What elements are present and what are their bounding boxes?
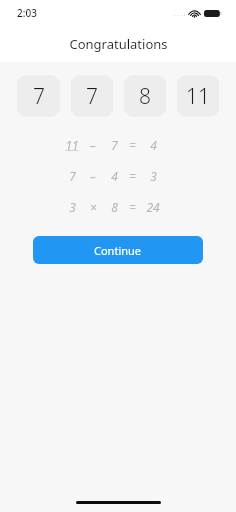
staticText: 3 [69,199,76,215]
staticText: Continue [94,243,142,258]
staticText: 3 [150,168,157,184]
button[interactable]: 7 [17,75,60,117]
button[interactable]: 7 [71,75,113,117]
staticText: Congratulations [69,35,168,53]
staticText: = [129,199,136,215]
button[interactable]: 11 [177,75,219,117]
staticText: = [129,168,136,184]
staticText: 4 [111,168,118,184]
staticText: × [90,199,97,215]
staticText: = [129,137,136,153]
staticText: 8 [111,199,118,215]
staticText: 24 [146,199,160,215]
staticText: 7 [111,137,118,153]
staticText: 8 [139,82,151,111]
button[interactable]: 8 [124,75,166,117]
staticText: – [90,168,96,184]
staticText: 7 [33,82,45,111]
staticText: 2:03 [17,6,37,20]
staticText: 7 [86,82,98,111]
staticText: – [90,137,96,153]
staticText: 11 [186,82,210,111]
staticText: 7 [69,168,76,184]
staticText: 11 [65,137,79,153]
button[interactable]: Continue [33,236,203,264]
staticText: 4 [150,137,157,153]
